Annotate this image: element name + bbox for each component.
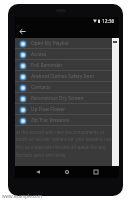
button[interactable]: Android Clothes Safety Item	[15, 71, 112, 82]
button[interactable]: Home	[61, 166, 73, 178]
staticText: 12:36	[102, 18, 115, 25]
button[interactable]: Back	[32, 166, 44, 178]
button[interactable]: Open My Playlist	[15, 38, 112, 49]
staticText: at the second with new live components t…	[16, 129, 112, 158]
staticText: Reconstruct Dry Screen	[31, 95, 84, 102]
staticText: Contacts	[31, 84, 51, 91]
button[interactable]: Access	[15, 49, 112, 60]
staticText: Open My Playlist	[31, 40, 69, 47]
button[interactable]: Reconstruct Dry Screen	[15, 93, 112, 104]
staticText: Up Flow Flower	[31, 106, 66, 113]
button[interactable]: Up Flow Flower	[15, 104, 112, 115]
staticText: Poll Reminder	[31, 62, 63, 69]
button[interactable]: Contacts	[15, 82, 112, 93]
button[interactable]: Recent apps	[90, 166, 102, 178]
button[interactable]: Back	[16, 25, 28, 37]
button[interactable]: Zip Trac Instance	[15, 115, 112, 126]
button[interactable]: Poll Reminder	[15, 60, 112, 71]
staticText: Android Clothes Safety Item	[31, 73, 94, 80]
staticText: www.example.com	[2, 193, 42, 199]
staticText: Access	[31, 51, 46, 58]
staticText: Zip Trac Instance	[31, 117, 70, 124]
